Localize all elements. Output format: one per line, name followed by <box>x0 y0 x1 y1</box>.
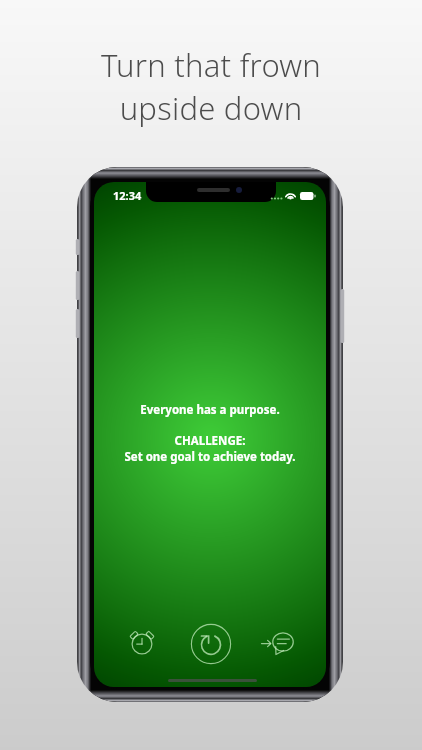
button[interactable]: New challenge <box>187 620 235 668</box>
staticText: CHALLENGE: Set one goal to achieve today… <box>124 433 296 464</box>
button[interactable]: Share <box>261 622 305 662</box>
staticText: Turn that frown upside down <box>0 44 422 129</box>
staticText: 12:34 <box>113 188 142 203</box>
staticText: Everyone has a purpose. <box>140 402 280 418</box>
button[interactable]: Set reminder <box>124 626 160 662</box>
